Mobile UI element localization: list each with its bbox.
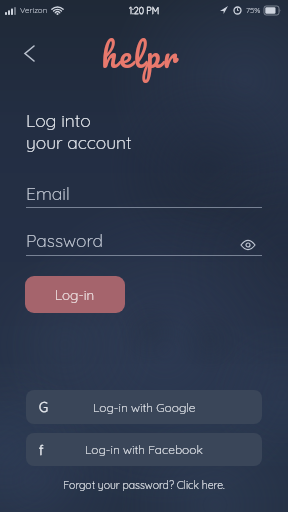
button[interactable] bbox=[26, 229, 262, 256]
staticText: Verizon bbox=[20, 5, 48, 15]
button[interactable] bbox=[239, 238, 256, 251]
staticText: Email bbox=[26, 182, 70, 204]
staticText: Log-in with Facebook bbox=[85, 442, 203, 457]
staticText: 75% bbox=[246, 5, 261, 15]
staticText: G bbox=[39, 399, 49, 415]
button[interactable]: Forgot your password? Click here. bbox=[0, 478, 288, 491]
staticText: f bbox=[39, 442, 44, 458]
staticText: helpr bbox=[0, 28, 285, 82]
staticText: 1:20 PM bbox=[129, 5, 160, 16]
staticText: Log into your account bbox=[26, 109, 132, 154]
staticText: Log-in with Google bbox=[93, 400, 196, 415]
button[interactable]: G bbox=[26, 390, 262, 424]
button[interactable]: f bbox=[26, 433, 262, 466]
staticText: Password bbox=[26, 229, 104, 251]
button[interactable]: Log-in bbox=[25, 276, 125, 313]
staticText: Log-in bbox=[55, 286, 95, 303]
button[interactable] bbox=[26, 182, 262, 208]
button[interactable] bbox=[18, 42, 40, 64]
